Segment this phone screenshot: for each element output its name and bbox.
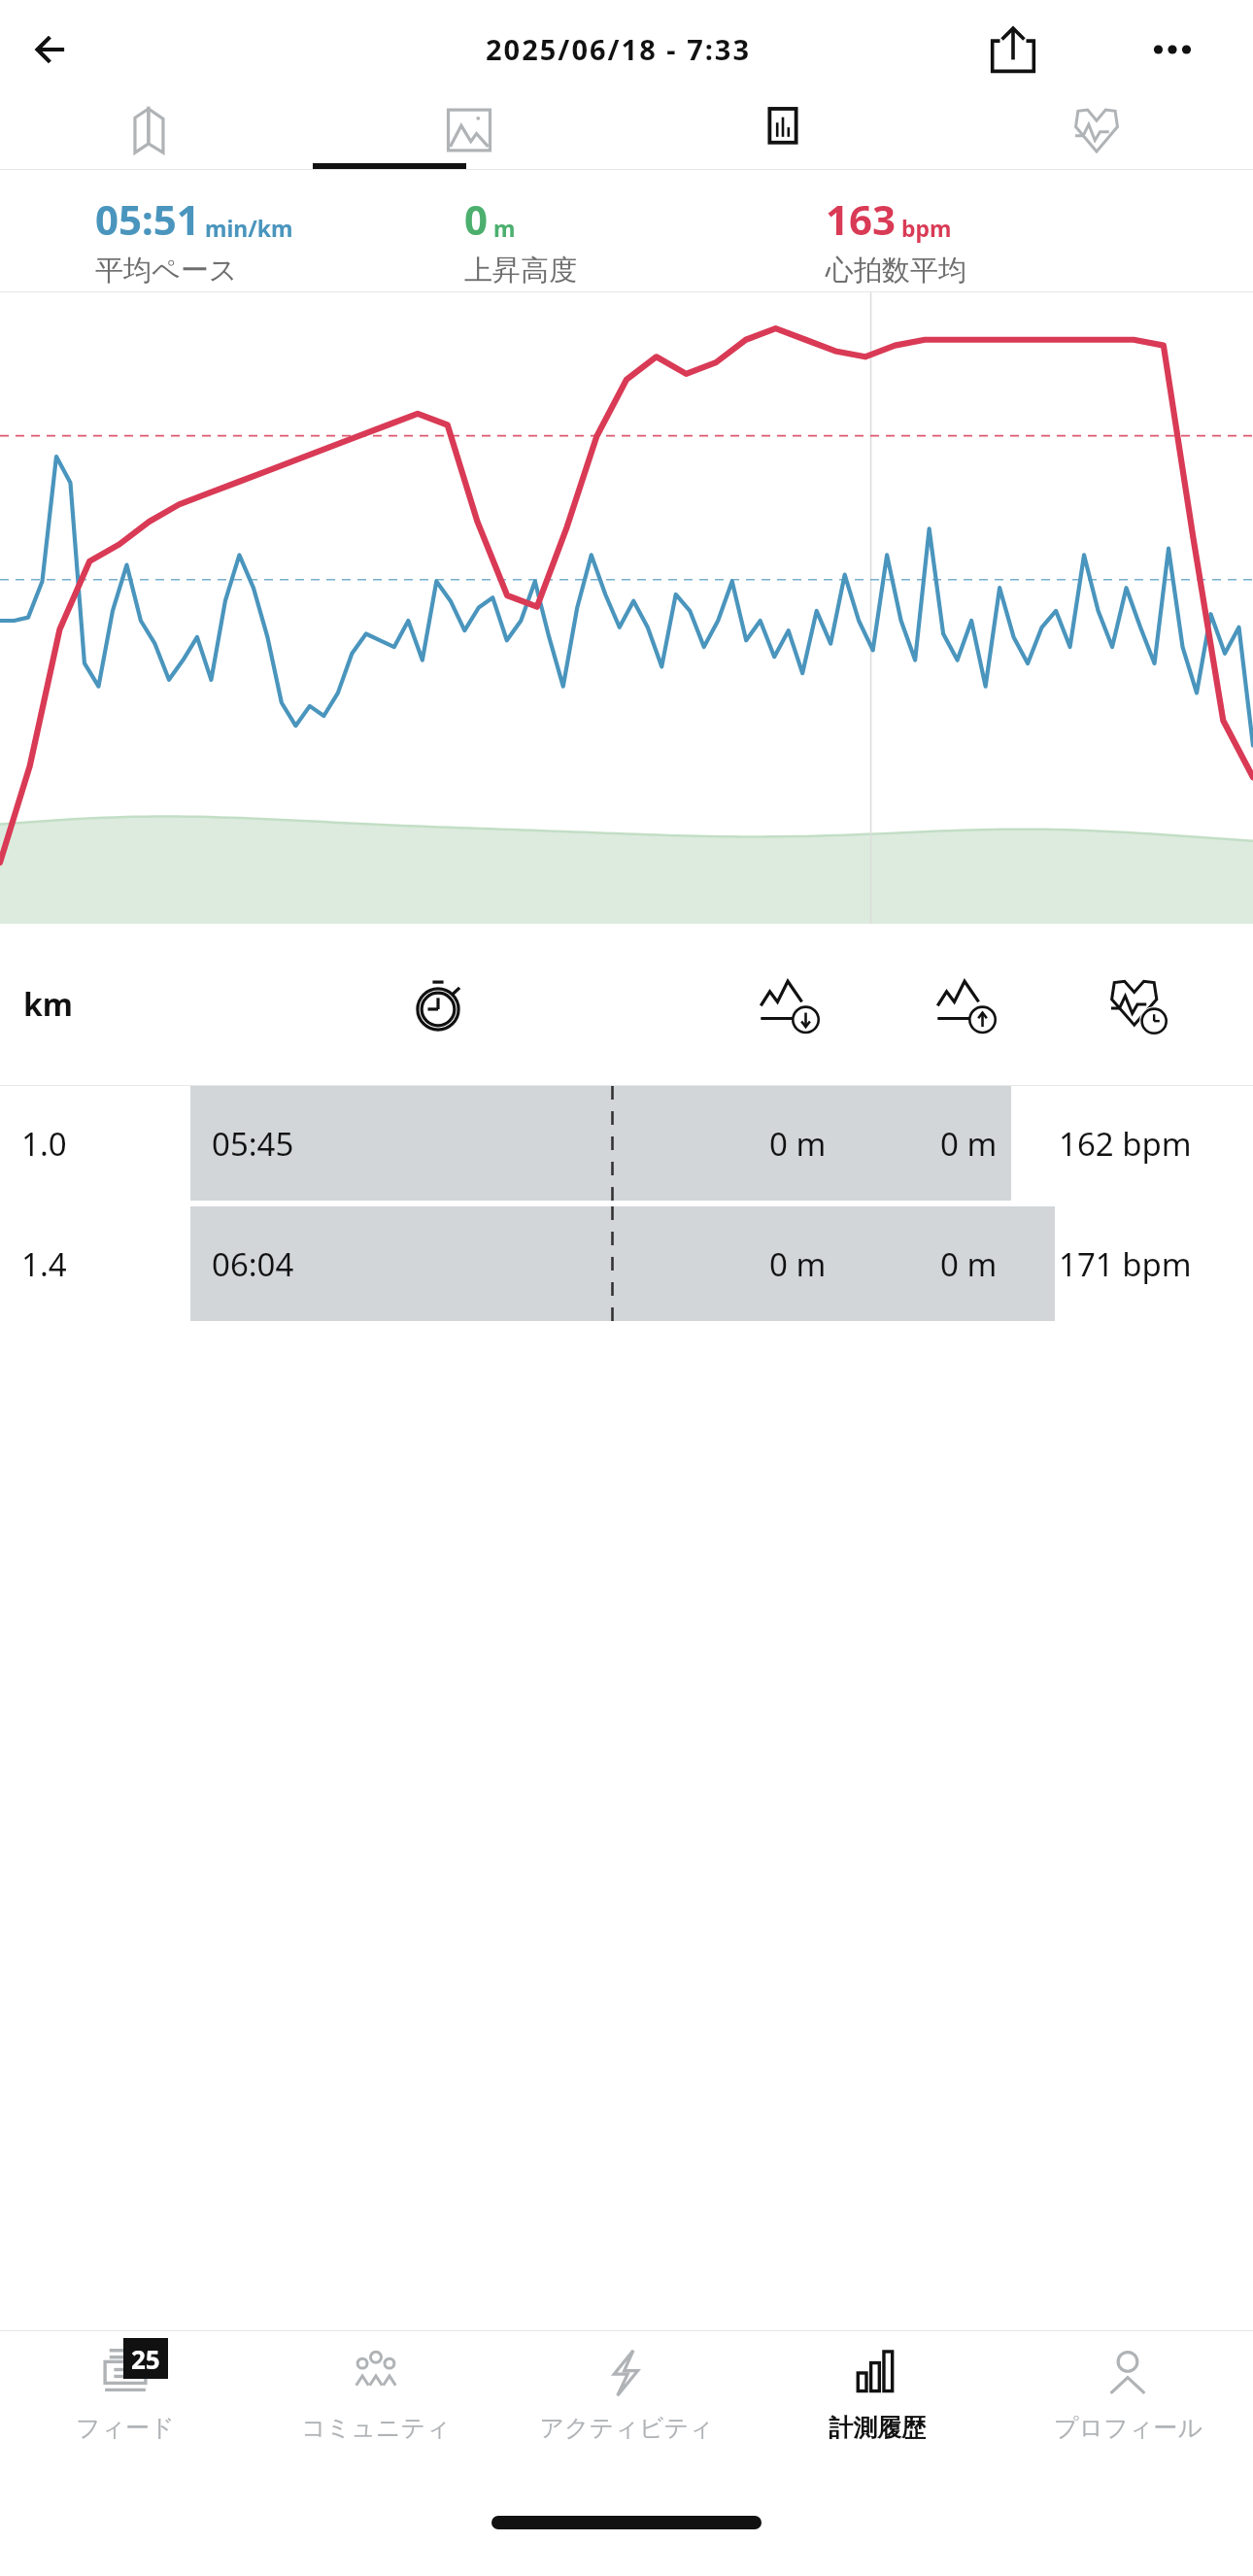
staticText: フィード	[76, 2413, 175, 2443]
staticText: 05:51	[95, 191, 200, 247]
staticText: 0	[464, 191, 489, 247]
button[interactable]: 25	[0, 2331, 251, 2477]
button[interactable]: 計測履歴	[752, 2331, 1002, 2477]
staticText: min/km	[205, 213, 293, 243]
staticText: 25	[131, 2342, 160, 2376]
button[interactable]: アクティビティ	[501, 2331, 752, 2477]
staticText: 計測履歴	[829, 2413, 926, 2443]
staticText: 2025/06/18 - 7:33	[486, 30, 752, 68]
staticText: 05:45	[212, 1122, 294, 1166]
staticText: 0 m	[940, 1242, 998, 1286]
button[interactable]: More options	[1136, 14, 1208, 85]
button[interactable]: 1.4	[0, 1206, 1253, 1321]
button[interactable]: コミュニティ	[251, 2331, 501, 2477]
button[interactable]: Heart rate	[939, 98, 1253, 169]
staticText: m	[493, 213, 516, 243]
staticText: 1.0	[21, 1122, 67, 1166]
staticText: bpm	[901, 213, 952, 243]
staticText: 上昇高度	[464, 253, 577, 288]
staticText: 162 bpm	[1059, 1122, 1192, 1166]
staticText: 1.4	[21, 1242, 67, 1286]
button[interactable]: Share	[977, 14, 1049, 85]
button[interactable]: プロフィール	[1002, 2331, 1253, 2477]
staticText: 心拍数平均	[826, 253, 966, 288]
button[interactable]: Charts	[626, 98, 939, 169]
button[interactable]: 1.0	[0, 1086, 1253, 1201]
staticText: 平均ペース	[95, 253, 238, 288]
button[interactable]: Map	[0, 98, 313, 169]
staticText: 0 m	[940, 1122, 998, 1166]
staticText: 06:04	[212, 1242, 294, 1286]
button[interactable]: Back	[25, 20, 84, 79]
staticText: プロフィール	[1054, 2413, 1202, 2443]
staticText: アクティビティ	[539, 2413, 714, 2443]
staticText: コミュニティ	[301, 2413, 451, 2443]
staticText: 0 m	[769, 1242, 827, 1286]
staticText: km	[23, 983, 74, 1026]
button[interactable]: Photos	[313, 98, 626, 169]
staticText: 171 bpm	[1059, 1242, 1192, 1286]
staticText: 0 m	[769, 1122, 827, 1166]
staticText: 163	[826, 191, 897, 247]
